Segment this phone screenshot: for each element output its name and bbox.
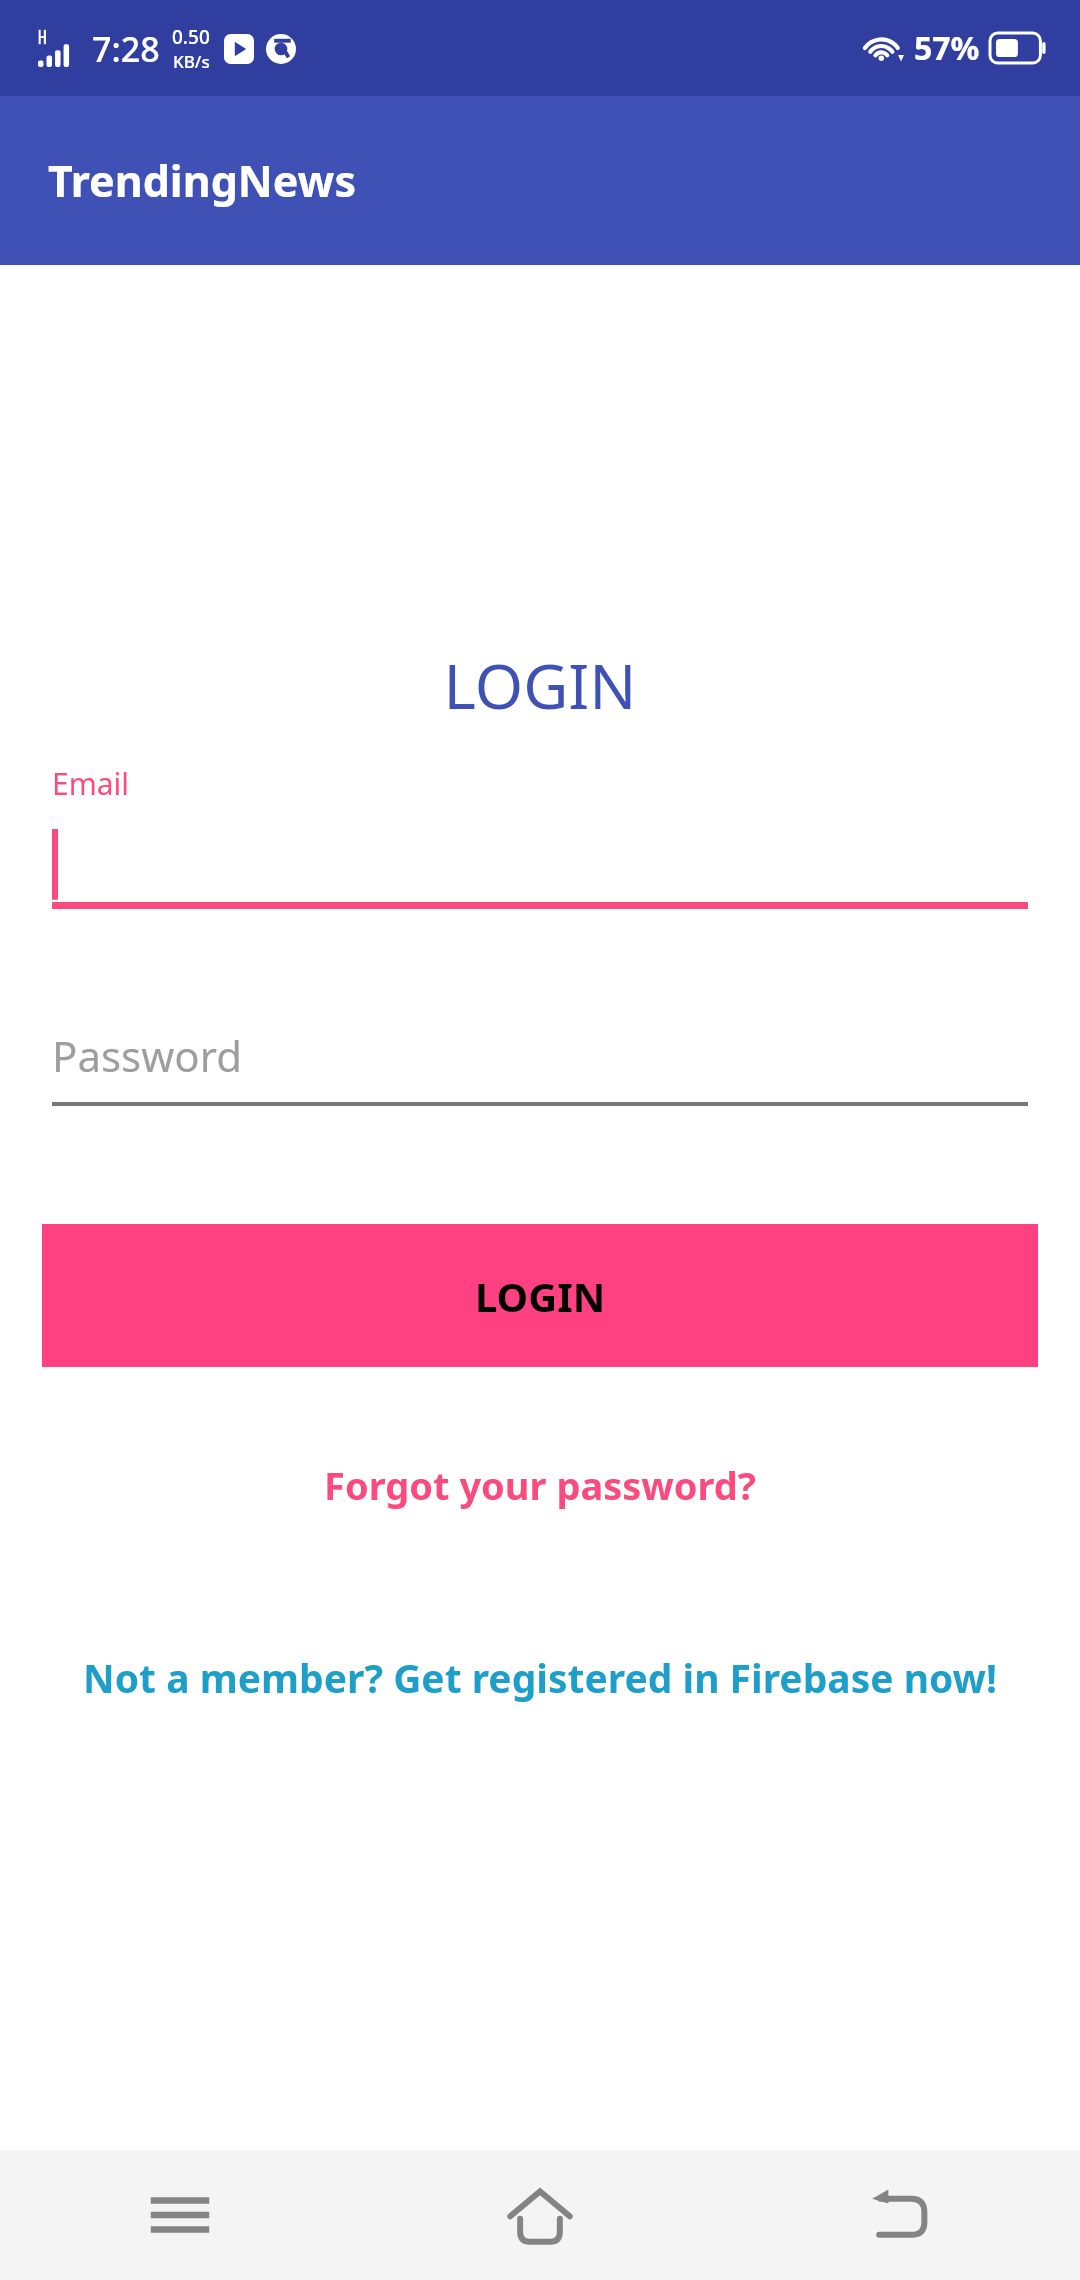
staticText: Password	[52, 1027, 242, 1084]
staticText: LOGIN	[0, 643, 1080, 727]
staticText: TrendingNews	[48, 151, 356, 210]
button[interactable]: LOGIN	[42, 1224, 1038, 1367]
staticText: Email	[52, 763, 130, 804]
button[interactable]: Email	[52, 763, 1028, 909]
staticText: Not a member? Get registered in Firebase…	[83, 1651, 997, 1704]
staticText: LOGIN	[475, 1269, 606, 1323]
staticText: 7:28	[92, 26, 160, 72]
button[interactable]: Home	[360, 2150, 720, 2280]
button[interactable]: Recent apps	[0, 2150, 360, 2280]
staticText: 57%	[914, 26, 980, 70]
button[interactable]: Password	[52, 1027, 1028, 1106]
staticText: 0.50	[172, 24, 210, 50]
staticText: Forgot your password?	[324, 1459, 756, 1511]
button[interactable]: Not a member? Get registered in Firebase…	[0, 1651, 1080, 1704]
button[interactable]: Back	[720, 2150, 1080, 2280]
staticText: KB/s	[173, 50, 210, 73]
button[interactable]: Forgot your password?	[0, 1459, 1080, 1511]
